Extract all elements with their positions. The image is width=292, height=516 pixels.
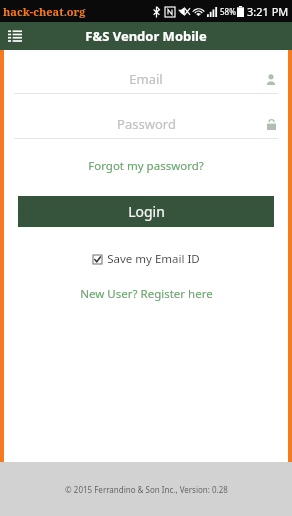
staticText: Save my Email ID (107, 251, 200, 267)
button[interactable]: Forgot my password? (78, 155, 214, 177)
staticText: New User? Register here (80, 286, 213, 302)
button[interactable]: Password (14, 113, 278, 139)
button[interactable]: Email (14, 68, 278, 94)
button[interactable]: Login (18, 196, 274, 227)
button[interactable]: Open navigation menu (0, 22, 30, 50)
staticText: F&S Vendor Mobile (85, 27, 207, 45)
staticText: hack-cheat.org (3, 4, 86, 19)
staticText: Forgot my password? (88, 158, 204, 174)
button[interactable]: New User? Register here (70, 283, 223, 305)
staticText: Password (117, 115, 176, 133)
staticText: Login (128, 202, 165, 221)
staticText: Email (129, 70, 163, 88)
staticText: 58% (220, 6, 236, 17)
staticText: 3:21 PM (247, 4, 289, 19)
button[interactable]: Save my Email ID (87, 248, 206, 270)
staticText: © 2015 Ferrandino & Son Inc., Version: 0… (65, 484, 228, 495)
